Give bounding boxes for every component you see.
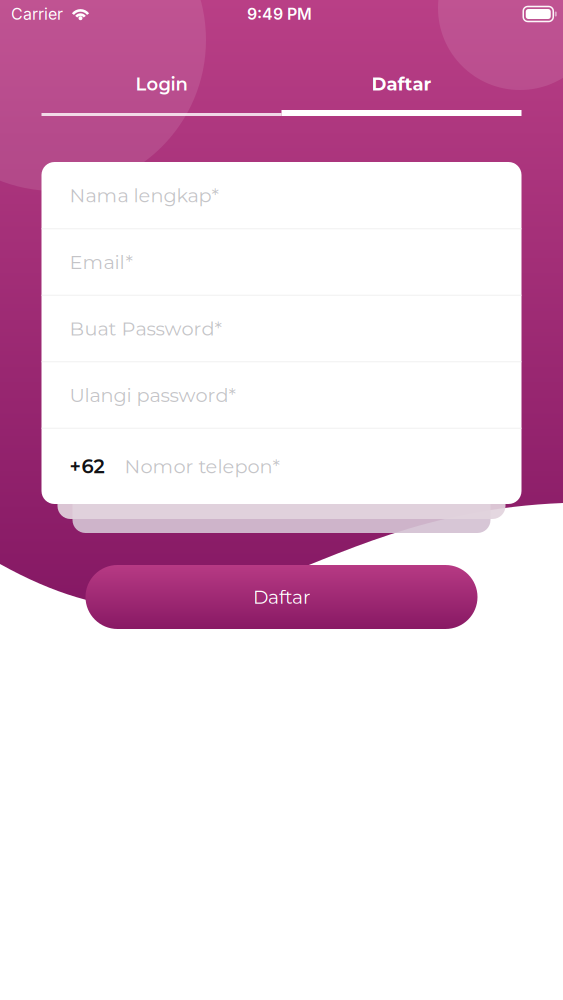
staticText: Carrier: [11, 4, 63, 24]
staticText: Daftar: [253, 586, 310, 608]
staticText: Login: [135, 73, 187, 95]
staticText: +62: [69, 454, 104, 478]
button[interactable]: Email*: [41, 229, 521, 295]
staticText: Daftar: [371, 73, 431, 95]
staticText: 9:49 PM: [247, 4, 312, 24]
button[interactable]: Buat Password*: [41, 296, 521, 361]
button[interactable]: Login: [41, 58, 281, 110]
staticText: Nama lengkap*: [69, 183, 218, 207]
staticText: Email*: [69, 250, 132, 274]
staticText: Nomor telepon*: [124, 454, 279, 478]
button[interactable]: +62: [41, 429, 521, 504]
button[interactable]: Ulangi password*: [41, 362, 521, 428]
button[interactable]: Nama lengkap*: [41, 162, 521, 228]
button[interactable]: Daftar: [281, 58, 521, 110]
staticText: Ulangi password*: [69, 383, 235, 407]
staticText: Buat Password*: [69, 317, 221, 340]
button[interactable]: Daftar: [85, 565, 477, 629]
